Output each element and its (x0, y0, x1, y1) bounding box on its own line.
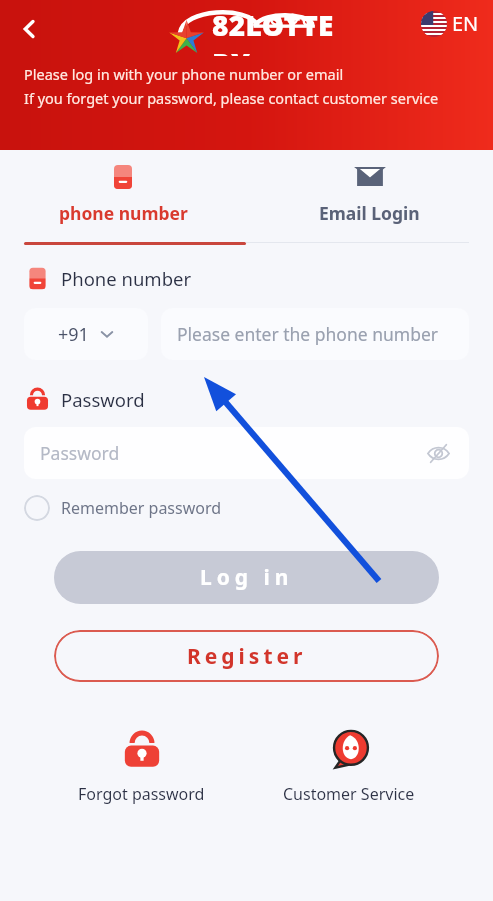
staticText: phone number (59, 201, 188, 225)
button[interactable]: Remember password (24, 495, 222, 521)
button[interactable]: Forgot password (78, 728, 205, 805)
staticText: Password (40, 441, 120, 465)
button[interactable]: +91 (24, 308, 148, 360)
staticText: If you forget your password, please cont… (24, 88, 439, 108)
button[interactable]: Customer Service (283, 728, 415, 805)
staticText: Email Login (319, 201, 420, 225)
button[interactable]: Email Login (246, 158, 493, 242)
staticText: Password (61, 387, 145, 412)
button[interactable]: Language EN (421, 10, 479, 37)
staticText: +91 (58, 322, 89, 347)
button[interactable]: Back (8, 8, 50, 50)
staticText: Forgot password (78, 783, 205, 805)
staticText: Register (187, 642, 307, 671)
staticText: Please enter the phone number (177, 322, 439, 346)
staticText: Please log in with your phone number or … (24, 64, 344, 84)
staticText: Customer Service (283, 783, 415, 805)
staticText: Remember password (61, 497, 222, 519)
button[interactable]: Register (54, 630, 439, 682)
button[interactable]: Password (24, 427, 469, 479)
staticText: 82LOTTERY (212, 6, 340, 56)
button[interactable]: Show password (423, 438, 453, 468)
staticText: EN (452, 10, 479, 37)
button[interactable]: Log in (54, 551, 439, 604)
button[interactable]: Please enter the phone number (161, 308, 469, 360)
button[interactable]: phone number (0, 158, 246, 242)
staticText: Phone number (61, 266, 192, 291)
staticText: Log in (200, 563, 294, 592)
